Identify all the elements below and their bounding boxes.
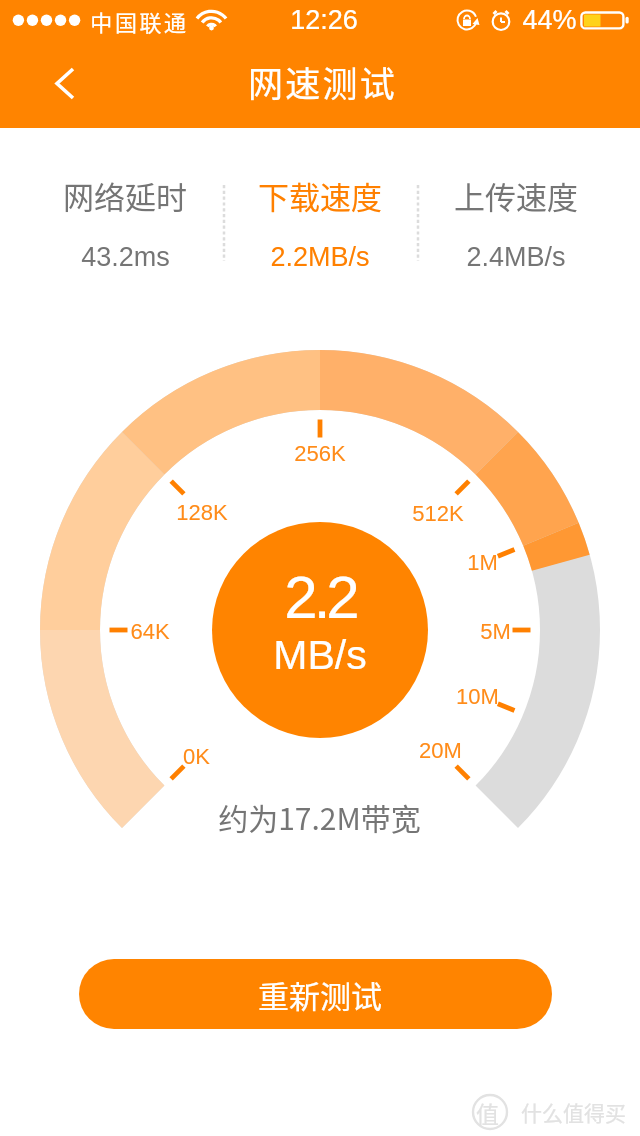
staticText: 5M: [480, 619, 511, 644]
staticText: 2.2MB/s: [270, 242, 370, 272]
staticText: 256K: [294, 441, 346, 466]
staticText: 64K: [130, 619, 170, 644]
staticText: 10M: [456, 684, 499, 709]
staticText: 重新测试: [258, 972, 382, 1017]
staticText: 2.2: [284, 564, 356, 631]
staticText: 2.4MB/s: [466, 242, 566, 272]
button[interactable]: 网络延时: [28, 168, 222, 274]
staticText: 44%: [522, 5, 577, 35]
staticText: 20M: [419, 738, 462, 763]
button[interactable]: Back: [35, 53, 97, 115]
staticText: 网络延时: [63, 173, 187, 218]
staticText: 中国联通: [90, 5, 189, 37]
button[interactable]: 下载速度: [223, 168, 417, 274]
staticText: 0K: [183, 744, 210, 769]
button[interactable]: 上传速度: [419, 168, 613, 274]
staticText: 上传速度: [454, 173, 578, 218]
button[interactable]: 重新测试: [79, 959, 552, 1029]
staticText: 下载速度: [258, 173, 382, 218]
staticText: 512K: [412, 501, 464, 526]
staticText: 值: [476, 1096, 499, 1129]
staticText: 12:26: [290, 5, 358, 35]
staticText: 网速测试: [248, 56, 397, 107]
staticText: 约为17.2M带宽: [218, 795, 421, 838]
staticText: MB/s: [273, 632, 367, 678]
staticText: 128K: [176, 500, 228, 525]
staticText: 什么值得买: [521, 1097, 626, 1127]
staticText: 1M: [467, 550, 498, 575]
staticText: 43.2ms: [81, 242, 170, 272]
